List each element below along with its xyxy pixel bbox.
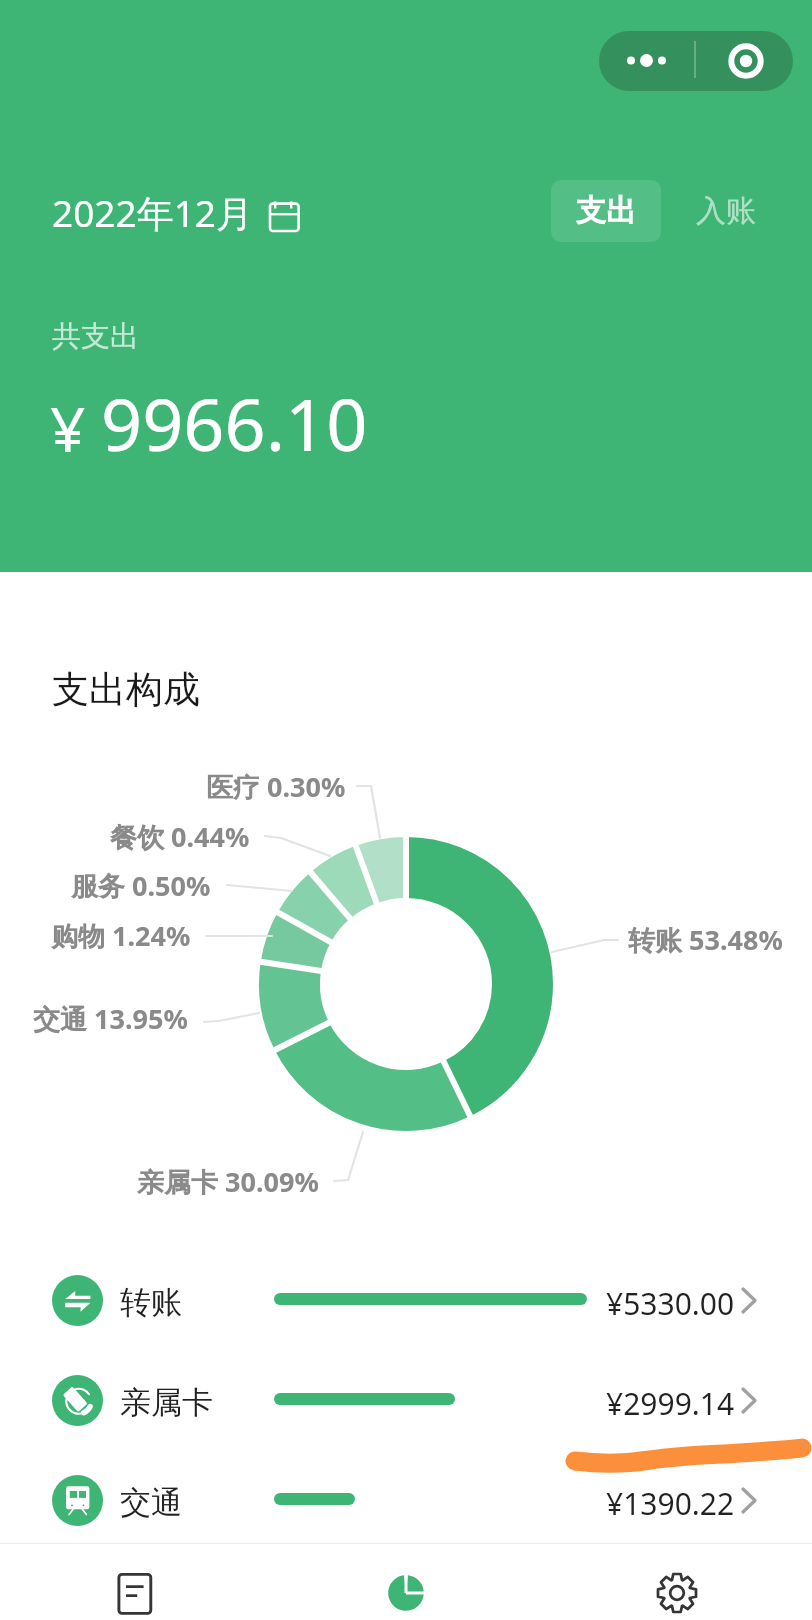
staticText: ¥5330.00 [606, 1283, 735, 1324]
button[interactable]: 2022年12月 [52, 187, 300, 238]
button[interactable]: Settings [541, 1544, 812, 1620]
button[interactable]: 支出 [551, 180, 661, 242]
staticText: 支出构成 [52, 666, 200, 713]
button[interactable]: Close [695, 31, 793, 91]
staticText: 交通 [120, 1483, 182, 1522]
staticText: 转账 53.48% [628, 921, 783, 958]
button[interactable]: Statistics [270, 1544, 541, 1620]
staticText: ¥2999.14 [606, 1383, 735, 1424]
staticText: 入账 [696, 192, 756, 230]
staticText: 9966.10 [101, 374, 368, 472]
staticText: 亲属卡 [120, 1383, 213, 1422]
staticText: ¥ [50, 386, 86, 470]
staticText: 支出 [576, 192, 636, 230]
staticText: 购物 1.24% [51, 917, 191, 954]
staticText: 转账 [120, 1283, 182, 1322]
staticText: 医疗 0.30% [206, 768, 346, 805]
button[interactable]: 转账 [0, 1251, 812, 1351]
staticText: ¥1390.22 [606, 1483, 735, 1524]
staticText: 餐饮 0.44% [110, 818, 250, 855]
button[interactable]: 交通 [0, 1451, 812, 1551]
staticText: 服务 0.50% [71, 867, 211, 904]
staticText: 2022年12月 [52, 187, 253, 238]
button[interactable]: 入账 [671, 180, 781, 242]
button[interactable]: More [599, 31, 695, 91]
button[interactable]: Bills [0, 1544, 270, 1620]
staticText: 亲属卡 30.09% [137, 1163, 319, 1200]
staticText: 共支出 [52, 318, 139, 355]
button[interactable]: 亲属卡 [0, 1351, 812, 1451]
staticText: 交通 13.95% [33, 1000, 188, 1037]
